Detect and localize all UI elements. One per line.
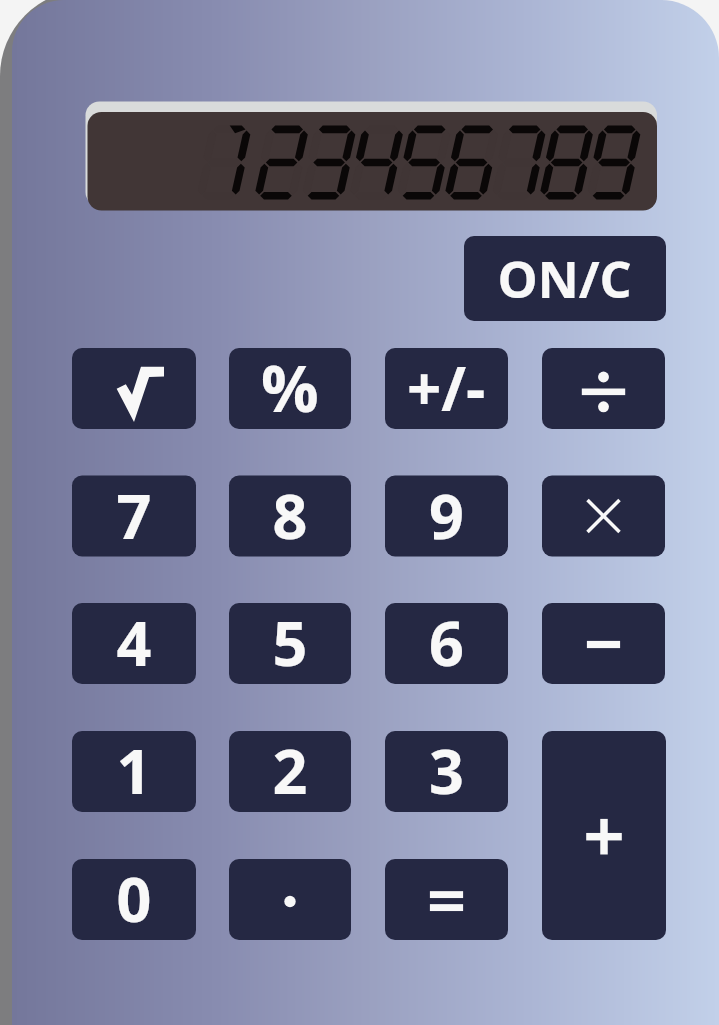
button[interactable]: Percent (229, 348, 351, 429)
button[interactable]: 9 (385, 476, 508, 557)
button[interactable]: Plus minus (385, 348, 508, 429)
button[interactable]: Multiply (542, 476, 665, 557)
button[interactable]: Plus (542, 731, 666, 940)
button[interactable]: 5 (229, 603, 351, 684)
button[interactable]: Decimal point (229, 859, 351, 940)
button[interactable]: 8 (229, 476, 351, 557)
button[interactable]: 0 (72, 859, 196, 940)
button[interactable]: 3 (385, 731, 508, 812)
button[interactable]: Equals (385, 859, 508, 940)
button[interactable]: 1 (72, 731, 196, 812)
button[interactable]: On / Clear (464, 236, 666, 321)
button[interactable]: 4 (72, 603, 196, 684)
button[interactable]: 7 (72, 476, 196, 557)
button[interactable]: Divide (542, 348, 665, 429)
button[interactable]: Minus (542, 603, 665, 684)
button[interactable]: Square root (72, 348, 196, 429)
button[interactable]: 2 (229, 731, 351, 812)
button[interactable]: 6 (385, 603, 508, 684)
